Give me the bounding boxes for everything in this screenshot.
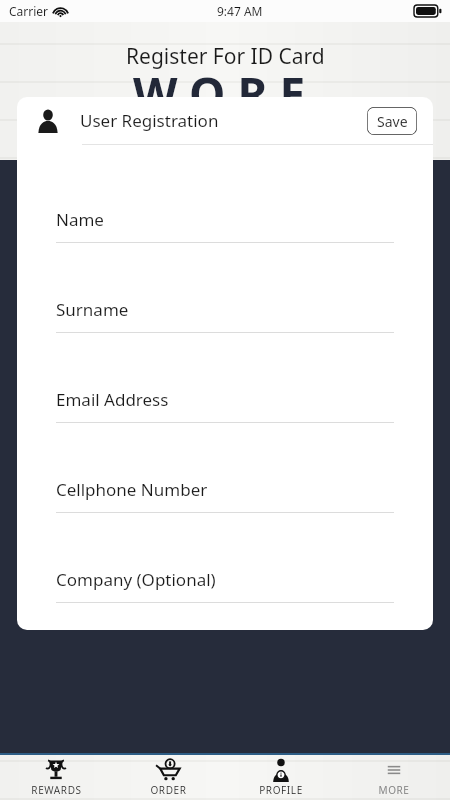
button[interactable]: MORE — [337, 755, 450, 800]
staticText: 9:47 AM — [217, 3, 263, 19]
staticText: PROFILE — [259, 783, 303, 797]
staticText: Save — [377, 112, 408, 131]
staticText: Company (Optional) — [56, 568, 216, 591]
staticText: MORE — [378, 783, 410, 797]
staticText: WORE — [133, 62, 318, 125]
button[interactable]: ORDER — [112, 755, 224, 800]
staticText: Name — [56, 208, 104, 231]
staticText: User Registration — [80, 109, 219, 132]
staticText: Register For ID Card — [126, 42, 325, 71]
staticText: ORDER — [150, 783, 187, 797]
staticText: Surname — [56, 298, 129, 321]
button[interactable]: REWARDS — [0, 755, 112, 800]
staticText: Carrier — [9, 3, 49, 19]
staticText: Cellphone Number — [56, 478, 208, 501]
button[interactable]: PROFILE — [224, 755, 337, 800]
staticText: Email Address — [56, 388, 169, 411]
staticText: REWARDS — [31, 783, 82, 797]
button[interactable]: Save — [367, 107, 417, 135]
